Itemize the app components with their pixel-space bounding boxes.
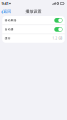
staticText: 9:41 xyxy=(2,1,9,6)
staticText: 缓存 xyxy=(5,37,11,40)
button[interactable]: 自动播 xyxy=(2,25,65,34)
staticText: 移动网络 xyxy=(5,19,17,22)
button[interactable]: 缓存 xyxy=(2,34,65,43)
button[interactable]: 移动网络 xyxy=(2,16,65,25)
staticText: 返回 xyxy=(3,9,11,14)
staticText: ‹ xyxy=(1,7,3,16)
staticText: 播放设置 xyxy=(25,9,41,14)
staticText: 自动播 xyxy=(5,28,14,31)
staticText: 1.2 GB xyxy=(52,37,62,40)
button[interactable]: ‹ xyxy=(0,7,12,16)
